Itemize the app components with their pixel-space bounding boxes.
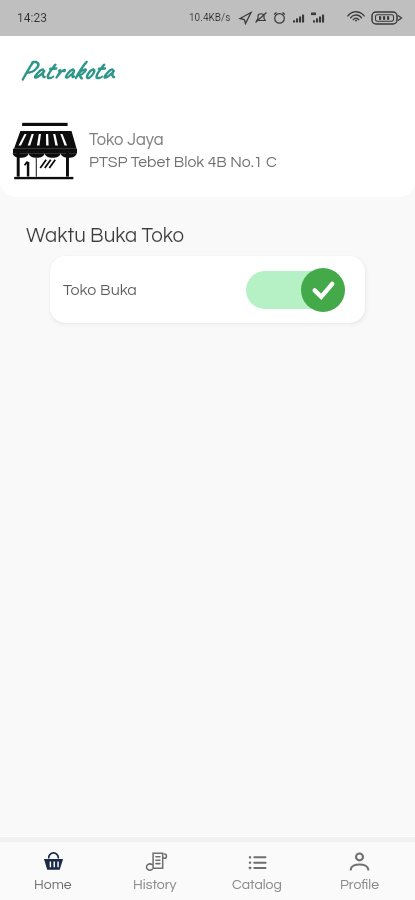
staticText: History xyxy=(133,878,177,892)
button[interactable]: Toggle store open xyxy=(246,268,345,312)
staticText: Waktu Buka Toko xyxy=(26,225,185,246)
staticText: 14:23 xyxy=(17,11,47,25)
staticText: PTSP Tebet Blok 4B No.1 C xyxy=(89,154,277,170)
staticText: Toko Buka xyxy=(63,282,137,298)
button[interactable]: Toko Buka xyxy=(50,256,365,323)
button[interactable]: Toko Jaya xyxy=(0,103,415,197)
staticText: Profile xyxy=(340,878,379,892)
staticText: Toko Jaya xyxy=(89,131,164,148)
staticText: Catalog xyxy=(232,878,282,892)
button[interactable]: Profile xyxy=(308,842,410,900)
staticText: 10.4KB/s xyxy=(189,12,231,24)
staticText: Patrakota xyxy=(20,53,113,87)
button[interactable]: History xyxy=(104,842,206,900)
button[interactable]: Catalog xyxy=(206,842,308,900)
staticText: Home xyxy=(34,878,72,892)
button[interactable]: Home xyxy=(2,842,104,900)
